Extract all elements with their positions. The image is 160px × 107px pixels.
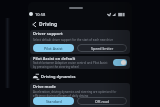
staticText: Driving dynamics [41, 74, 76, 79]
staticText: Switch between Adaptive cruise control a… [33, 61, 111, 69]
button[interactable]: Pilot Assist on default [30, 56, 130, 69]
staticText: Pilot Assist on default [33, 56, 76, 61]
button[interactable]: Speed limiter [77, 44, 127, 52]
button[interactable]: Standard [33, 97, 74, 105]
button[interactable]: Back [30, 20, 38, 28]
staticText: Driver support [33, 31, 63, 37]
staticText: Standard [46, 99, 62, 104]
staticText: Speed limiter [91, 46, 114, 51]
staticText: Pilot Assist [44, 46, 63, 51]
staticText: Driving [39, 21, 58, 28]
staticText: Drive mode [33, 84, 56, 89]
staticText: Off-road [95, 99, 110, 104]
staticText: 10:58 [35, 12, 46, 17]
button[interactable]: Off-road [77, 97, 127, 105]
staticText: Acceleration, driving dynamics and steer… [33, 90, 127, 97]
staticText: Select default driver support for the st… [33, 38, 114, 42]
button[interactable]: Pilot Assist [33, 44, 74, 52]
